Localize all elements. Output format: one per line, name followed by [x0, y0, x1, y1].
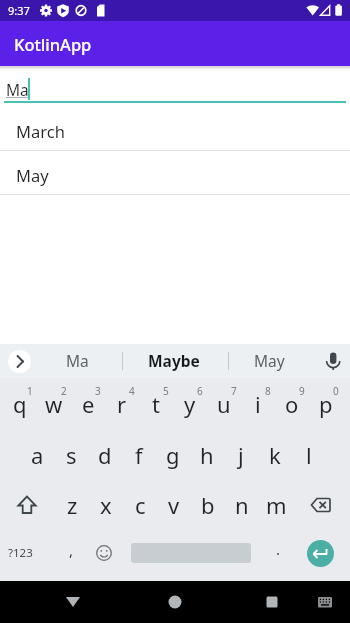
staticText: o: [285, 389, 299, 419]
staticText: r: [117, 389, 127, 419]
staticText: b: [201, 490, 215, 520]
staticText: i: [255, 389, 261, 419]
button[interactable]: b: [191, 480, 225, 530]
button[interactable]: g: [156, 429, 190, 480]
button[interactable]: o: [275, 378, 309, 429]
staticText: x: [100, 490, 112, 520]
staticText: KotlinApp: [14, 33, 92, 55]
button[interactable]: Ma: [36, 343, 118, 377]
button[interactable]: Maybe: [122, 343, 225, 377]
button[interactable]: ?123: [8, 545, 33, 561]
staticText: May: [254, 350, 285, 371]
button[interactable]: q: [3, 378, 37, 429]
staticText: z: [67, 490, 78, 520]
staticText: t: [152, 389, 160, 419]
button[interactable]: m: [259, 480, 293, 530]
button[interactable]: x: [89, 480, 123, 530]
staticText: 8: [265, 384, 271, 398]
staticText: c: [135, 490, 146, 520]
staticText: w: [45, 389, 63, 419]
staticText: y: [184, 389, 196, 419]
button[interactable]: [293, 480, 346, 530]
button[interactable]: [116, 581, 233, 623]
staticText: u: [217, 389, 231, 419]
staticText: p: [319, 389, 333, 419]
button[interactable]: ,: [69, 540, 74, 560]
button[interactable]: [8, 350, 31, 373]
button[interactable]: s: [54, 429, 88, 480]
staticText: Ma: [6, 79, 29, 100]
button[interactable]: [0, 480, 55, 530]
staticText: a: [31, 440, 44, 470]
button[interactable]: w: [37, 378, 71, 429]
staticText: h: [200, 440, 214, 470]
staticText: l: [306, 440, 312, 470]
staticText: 9:37: [8, 3, 30, 18]
button[interactable]: May: [229, 343, 310, 377]
button[interactable]: u: [207, 378, 241, 429]
button[interactable]: v: [157, 480, 191, 530]
button[interactable]: a: [20, 429, 54, 480]
staticText: n: [235, 490, 249, 520]
staticText: s: [66, 440, 77, 470]
button[interactable]: p: [309, 378, 343, 429]
staticText: March: [16, 120, 65, 142]
staticText: Ma: [66, 350, 89, 371]
button[interactable]: [96, 545, 112, 561]
staticText: m: [266, 490, 287, 520]
staticText: May: [16, 164, 49, 186]
staticText: f: [135, 440, 143, 470]
staticText: 1: [27, 384, 33, 398]
button[interactable]: z: [55, 480, 89, 530]
button[interactable]: [233, 581, 350, 623]
staticText: 3: [95, 384, 101, 398]
staticText: g: [166, 440, 180, 470]
button[interactable]: f: [122, 429, 156, 480]
staticText: 4: [129, 384, 135, 398]
button[interactable]: j: [224, 429, 258, 480]
button[interactable]: r: [105, 378, 139, 429]
button[interactable]: [0, 581, 116, 623]
button[interactable]: l: [292, 429, 326, 480]
button[interactable]: e: [71, 378, 105, 429]
staticText: 5: [163, 384, 169, 398]
button[interactable]: May: [0, 151, 350, 194]
button[interactable]: i: [241, 378, 275, 429]
staticText: k: [269, 440, 281, 470]
button[interactable]: March: [0, 107, 350, 150]
button[interactable]: [323, 351, 343, 371]
staticText: q: [13, 389, 27, 419]
staticText: d: [98, 440, 112, 470]
staticText: 6: [197, 384, 203, 398]
button[interactable]: h: [190, 429, 224, 480]
button[interactable]: y: [173, 378, 207, 429]
button[interactable]: [307, 540, 334, 567]
button[interactable]: n: [225, 480, 259, 530]
staticText: 0: [333, 384, 339, 398]
button[interactable]: k: [258, 429, 292, 480]
staticText: 2: [61, 384, 67, 398]
staticText: Maybe: [148, 350, 200, 371]
button[interactable]: c: [123, 480, 157, 530]
button[interactable]: t: [139, 378, 173, 429]
button[interactable]: d: [88, 429, 122, 480]
staticText: 7: [231, 384, 237, 398]
staticText: e: [82, 389, 95, 419]
staticText: 9: [299, 384, 305, 398]
button[interactable]: .: [276, 539, 281, 559]
button[interactable]: Ma: [4, 66, 346, 103]
staticText: v: [168, 490, 180, 520]
staticText: j: [238, 440, 244, 470]
